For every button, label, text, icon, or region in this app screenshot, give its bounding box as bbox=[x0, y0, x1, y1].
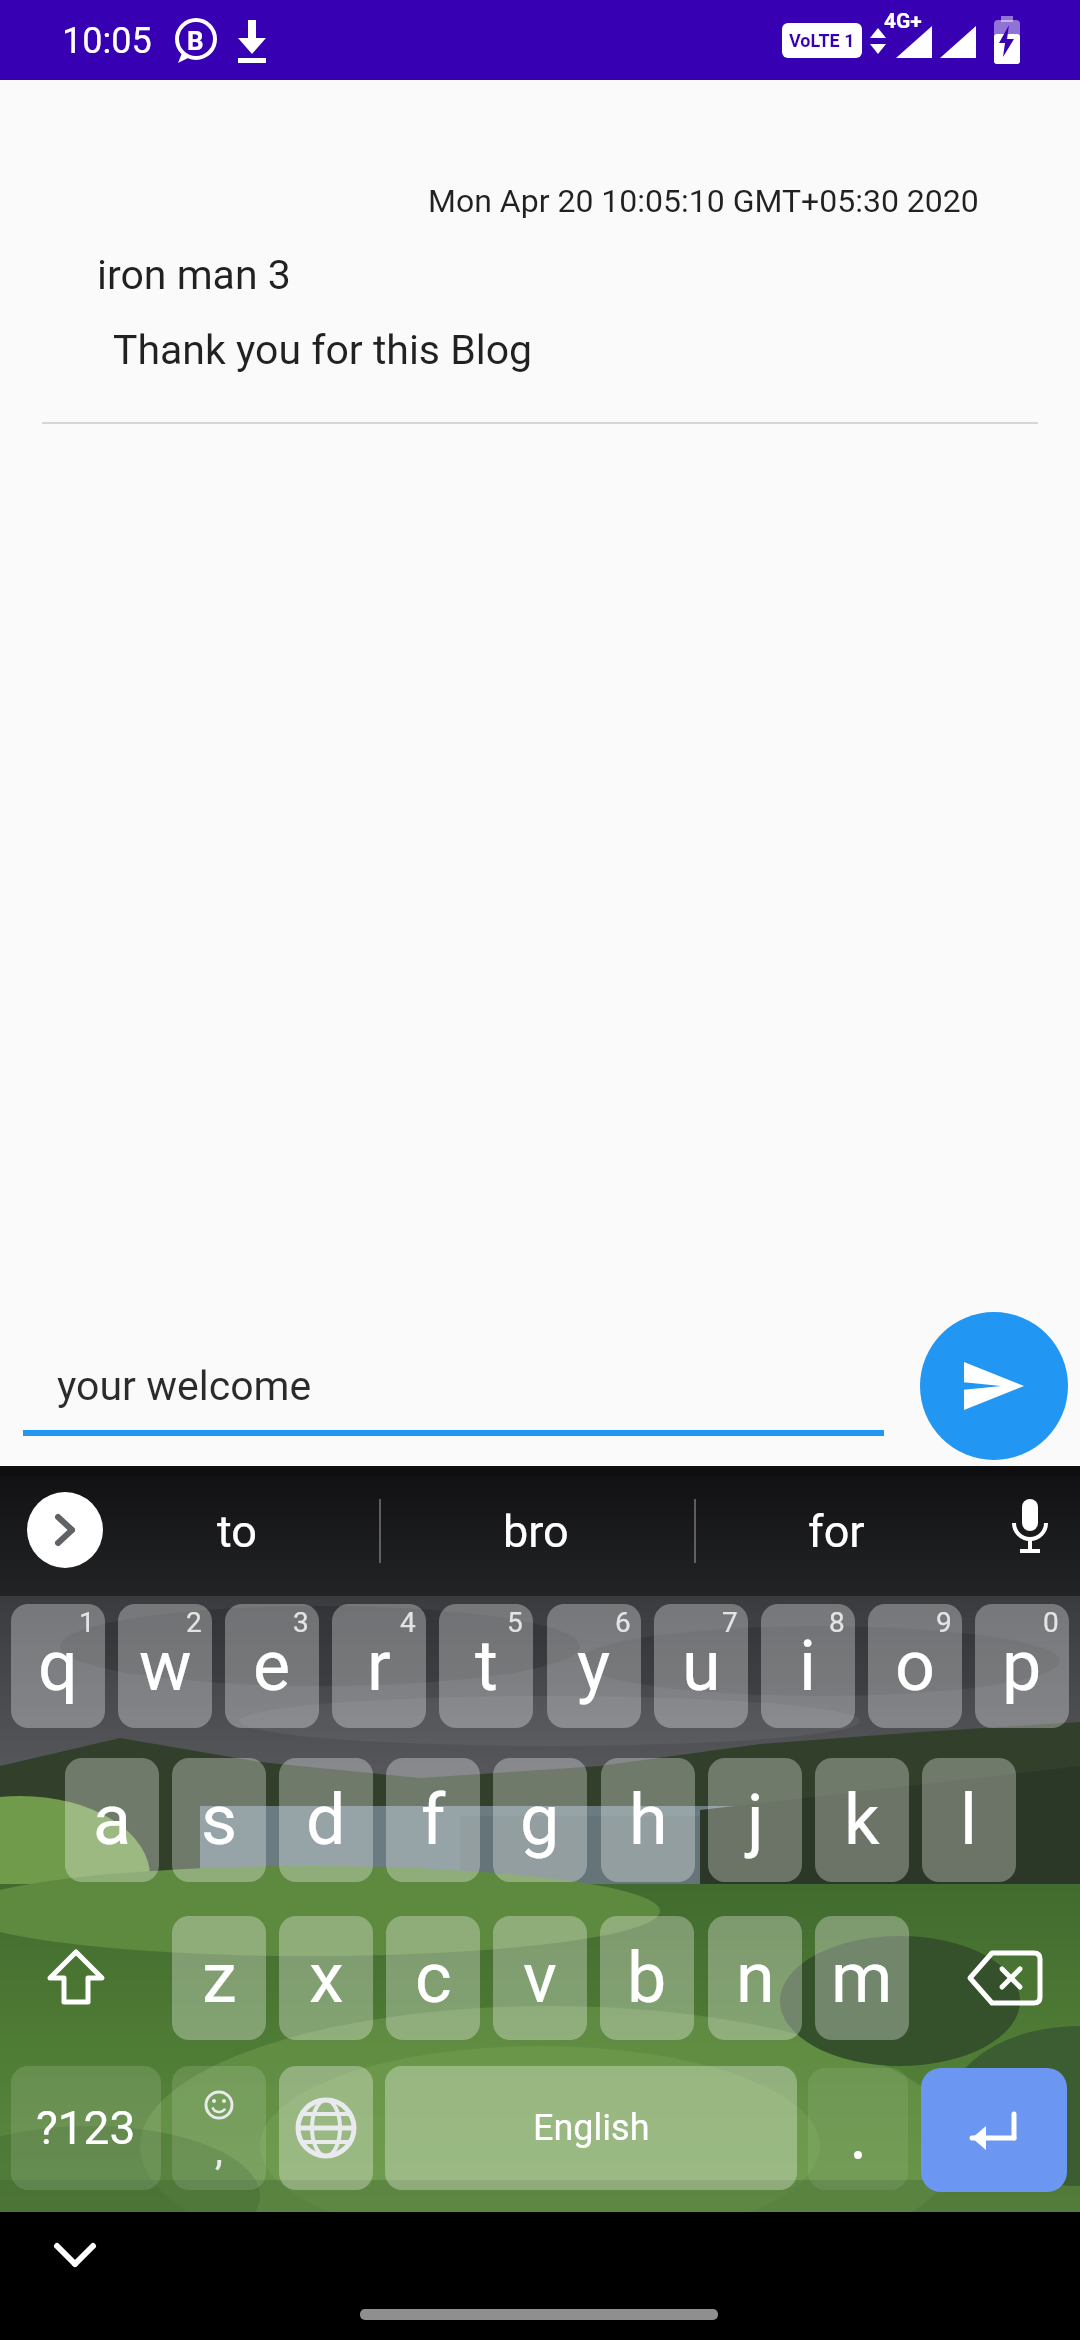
staticText: w bbox=[139, 1625, 192, 1707]
button[interactable] bbox=[40, 2226, 110, 2286]
button[interactable]: x bbox=[279, 1916, 373, 2040]
staticText: t bbox=[475, 1625, 498, 1707]
button[interactable]: c bbox=[386, 1916, 480, 2040]
button[interactable] bbox=[27, 1492, 103, 1568]
staticText: c bbox=[415, 1937, 452, 2019]
staticText: your welcome bbox=[57, 1362, 312, 1410]
staticText: j bbox=[747, 1779, 764, 1861]
button[interactable]: y bbox=[547, 1604, 641, 1728]
staticText: B bbox=[187, 26, 204, 56]
staticText: h bbox=[629, 1779, 668, 1861]
button[interactable]: v bbox=[493, 1916, 587, 2040]
button[interactable]: , bbox=[172, 2066, 266, 2190]
staticText: n bbox=[736, 1937, 775, 2019]
button[interactable]: u bbox=[654, 1604, 748, 1728]
button[interactable]: i bbox=[761, 1604, 855, 1728]
staticText: o bbox=[895, 1625, 935, 1707]
staticText: m bbox=[831, 1937, 893, 2019]
staticText: 0 bbox=[1043, 1606, 1059, 1639]
staticText: bro bbox=[503, 1505, 569, 1558]
button[interactable]: r bbox=[332, 1604, 426, 1728]
staticText: e bbox=[253, 1625, 291, 1707]
staticText: y bbox=[577, 1625, 611, 1707]
staticText: z bbox=[202, 1937, 237, 2019]
staticText: g bbox=[520, 1779, 560, 1861]
button[interactable]: g bbox=[493, 1758, 587, 1882]
button[interactable]: bro bbox=[436, 1496, 636, 1566]
staticText: b bbox=[627, 1937, 667, 2019]
button[interactable]: a bbox=[65, 1758, 159, 1882]
button[interactable]: s bbox=[172, 1758, 266, 1882]
staticText: iron man 3 bbox=[97, 251, 291, 299]
button[interactable] bbox=[279, 2066, 373, 2190]
staticText: 2 bbox=[186, 1606, 202, 1639]
button[interactable]: h bbox=[601, 1758, 695, 1882]
button[interactable]: f bbox=[386, 1758, 480, 1882]
staticText: r bbox=[367, 1625, 391, 1707]
button[interactable]: to bbox=[137, 1496, 337, 1566]
staticText: 4G+ bbox=[884, 9, 922, 34]
staticText: 6 bbox=[615, 1606, 631, 1639]
staticText: 7 bbox=[722, 1606, 738, 1639]
button[interactable]: l bbox=[922, 1758, 1016, 1882]
button[interactable]: b bbox=[600, 1916, 694, 2040]
staticText: a bbox=[93, 1779, 132, 1861]
staticText: p bbox=[1002, 1625, 1042, 1707]
staticText: q bbox=[38, 1625, 78, 1707]
staticText: s bbox=[201, 1779, 238, 1861]
button[interactable]: for bbox=[736, 1496, 936, 1566]
button[interactable] bbox=[920, 1312, 1068, 1460]
button[interactable]: o bbox=[868, 1604, 962, 1728]
staticText: k bbox=[844, 1779, 880, 1861]
staticText: Thank you for this Blog bbox=[113, 326, 533, 374]
button[interactable]: p bbox=[975, 1604, 1069, 1728]
button[interactable]: t bbox=[439, 1604, 533, 1728]
button[interactable] bbox=[921, 2068, 1067, 2192]
staticText: f bbox=[421, 1779, 446, 1861]
staticText: l bbox=[960, 1779, 978, 1861]
staticText: , bbox=[215, 2127, 223, 2174]
staticText: 3 bbox=[293, 1606, 309, 1639]
staticText: i bbox=[799, 1625, 817, 1707]
button[interactable] bbox=[994, 1492, 1066, 1564]
staticText: x bbox=[309, 1937, 344, 2019]
staticText: 10:05 bbox=[62, 20, 152, 62]
staticText: to bbox=[217, 1505, 257, 1558]
staticText: 4 bbox=[400, 1606, 416, 1639]
button[interactable]: j bbox=[708, 1758, 802, 1882]
staticText: English bbox=[533, 2107, 650, 2149]
button[interactable]: w bbox=[118, 1604, 212, 1728]
button[interactable]: your welcome bbox=[23, 1336, 884, 1436]
button[interactable]: d bbox=[279, 1758, 373, 1882]
button[interactable]: e bbox=[225, 1604, 319, 1728]
button[interactable]: English bbox=[385, 2066, 797, 2190]
button[interactable]: m bbox=[815, 1916, 909, 2040]
staticText: 9 bbox=[936, 1606, 952, 1639]
button[interactable]: z bbox=[172, 1916, 266, 2040]
button[interactable] bbox=[940, 1916, 1070, 2040]
staticText: v bbox=[523, 1937, 557, 2019]
staticText: VoLTE 1 bbox=[789, 30, 855, 51]
button[interactable]: q bbox=[11, 1604, 105, 1728]
button[interactable]: n bbox=[708, 1916, 802, 2040]
staticText: ?123 bbox=[36, 2101, 136, 2155]
button[interactable]: ?123 bbox=[11, 2066, 161, 2190]
staticText: 5 bbox=[507, 1606, 523, 1639]
button[interactable]: k bbox=[815, 1758, 909, 1882]
staticText: u bbox=[682, 1625, 721, 1707]
button[interactable] bbox=[11, 1916, 141, 2040]
button[interactable] bbox=[808, 2068, 908, 2190]
staticText: 1 bbox=[79, 1606, 95, 1639]
staticText: d bbox=[306, 1779, 346, 1861]
staticText: Mon Apr 20 10:05:10 GMT+05:30 2020 bbox=[428, 182, 979, 220]
staticText: 8 bbox=[829, 1606, 845, 1639]
staticText: for bbox=[808, 1505, 865, 1558]
